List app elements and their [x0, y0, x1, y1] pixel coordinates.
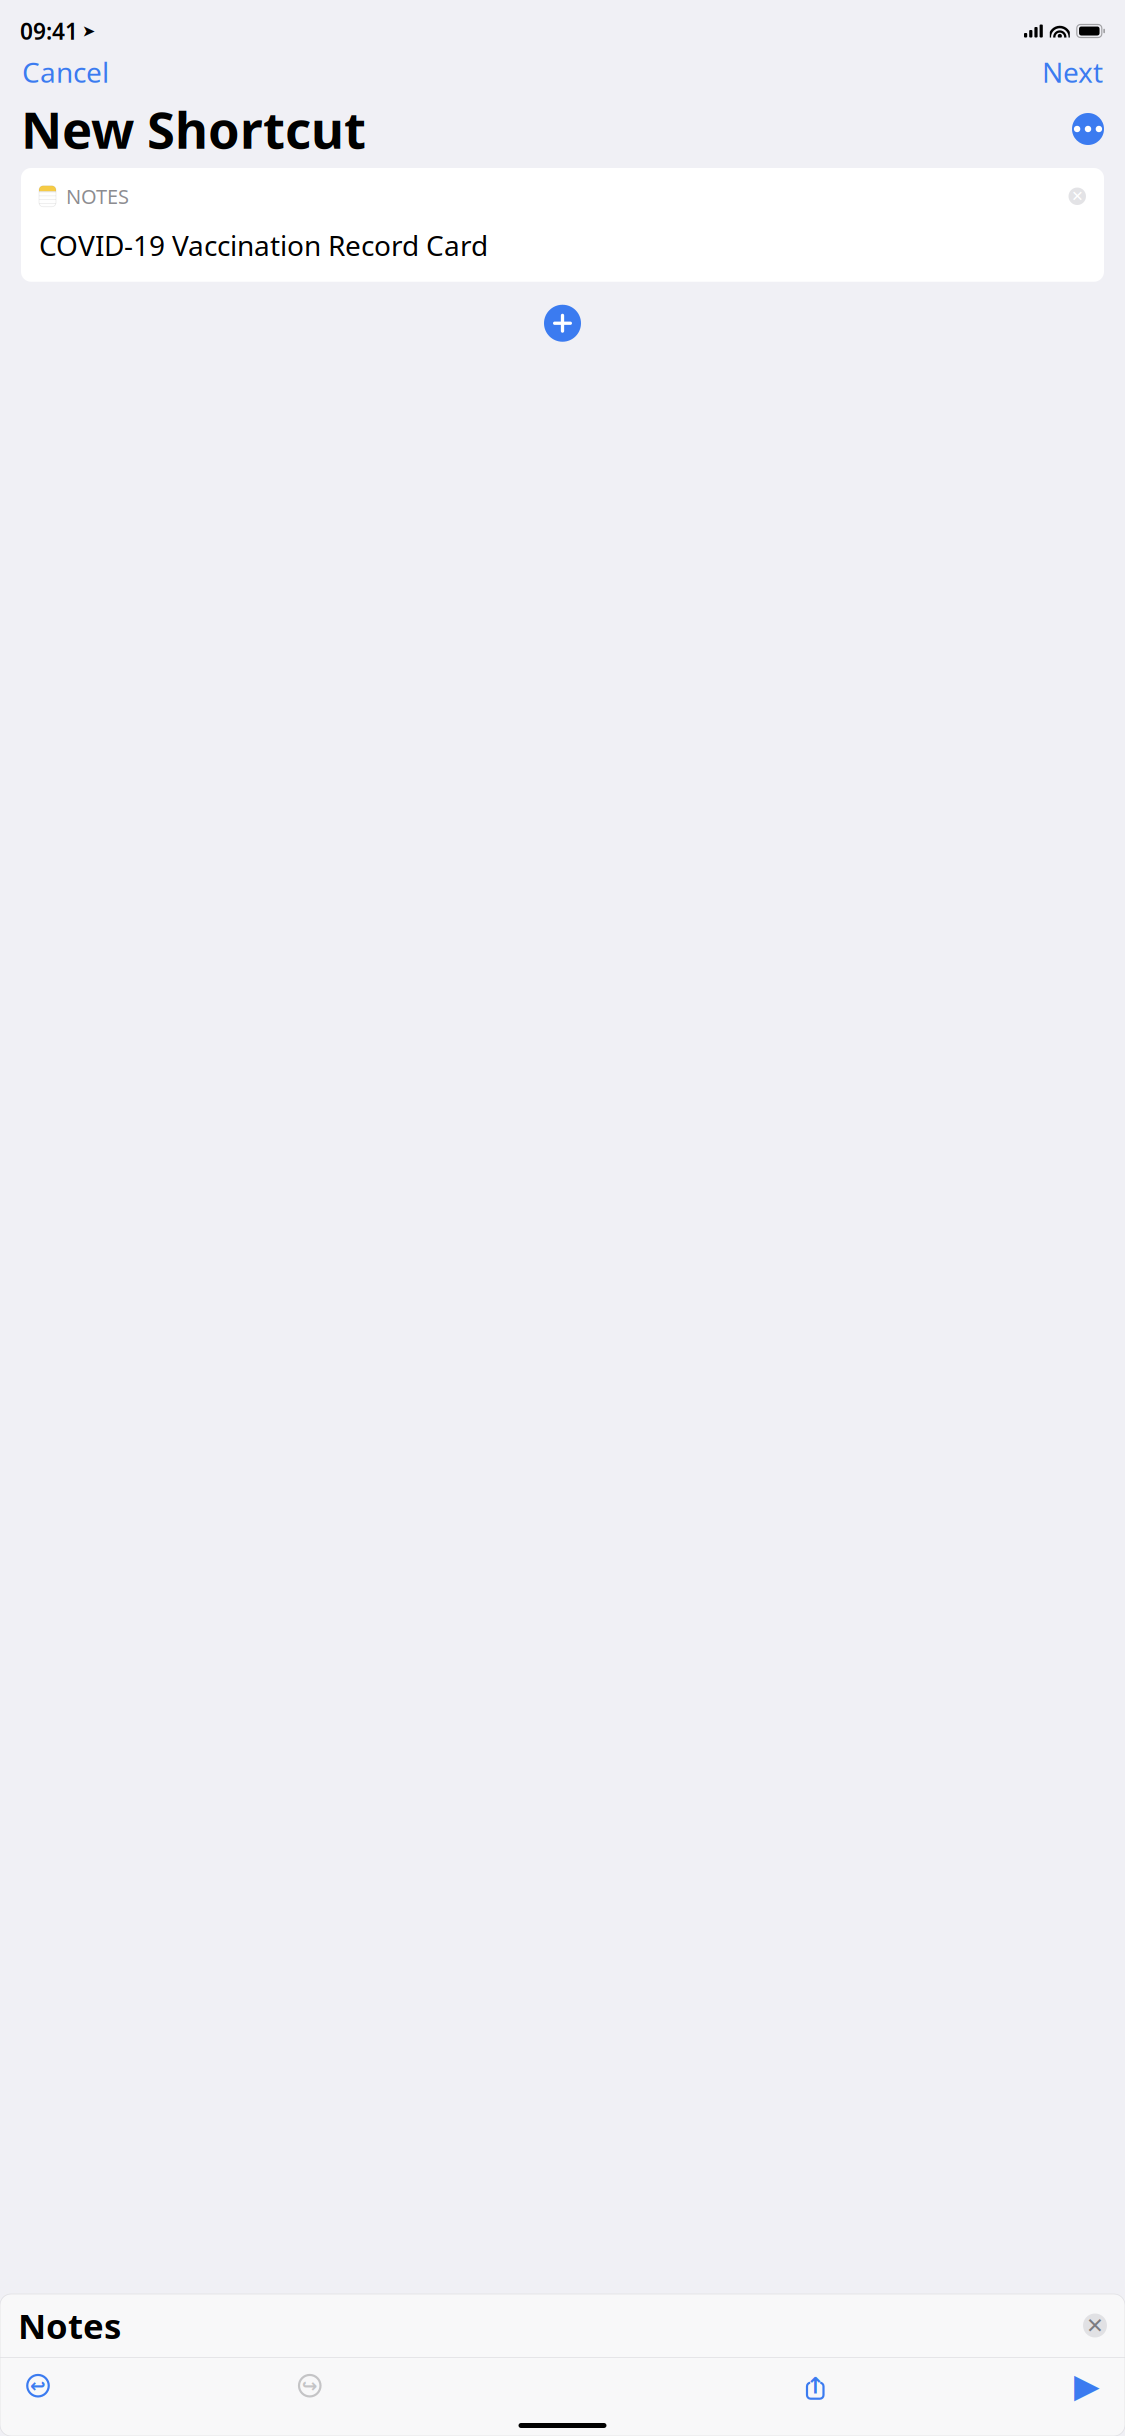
- button[interactable]: NOTES: [21, 168, 1104, 282]
- button[interactable]: Redo: [291, 2367, 329, 2405]
- staticText: Cancel: [22, 53, 109, 91]
- staticText: COVID-19 Vaccination Record Card: [39, 227, 488, 264]
- staticText: ✕: [1071, 188, 1083, 205]
- button[interactable]: Add action: [544, 305, 581, 342]
- staticText: 09:41: [20, 16, 78, 46]
- staticText: ↪: [302, 2375, 318, 2396]
- button[interactable]: Cancel: [18, 46, 113, 98]
- staticText: Notes: [18, 2302, 121, 2348]
- button[interactable]: Next: [1038, 46, 1107, 98]
- staticText: ✕: [1086, 2313, 1104, 2338]
- button[interactable]: More options: [1072, 113, 1104, 145]
- button[interactable]: Play: [1068, 2367, 1106, 2405]
- staticText: ↩: [30, 2375, 46, 2396]
- button[interactable]: Close: [1083, 2313, 1107, 2337]
- button[interactable]: Undo: [19, 2367, 57, 2405]
- staticText: New Shortcut: [21, 95, 366, 163]
- staticText: ➤: [82, 22, 95, 40]
- staticText: Next: [1042, 53, 1103, 91]
- staticText: ↑: [806, 2373, 825, 2398]
- staticText: ▶: [1074, 2367, 1100, 2405]
- button[interactable]: Share: [796, 2367, 834, 2405]
- staticText: NOTES: [66, 183, 129, 210]
